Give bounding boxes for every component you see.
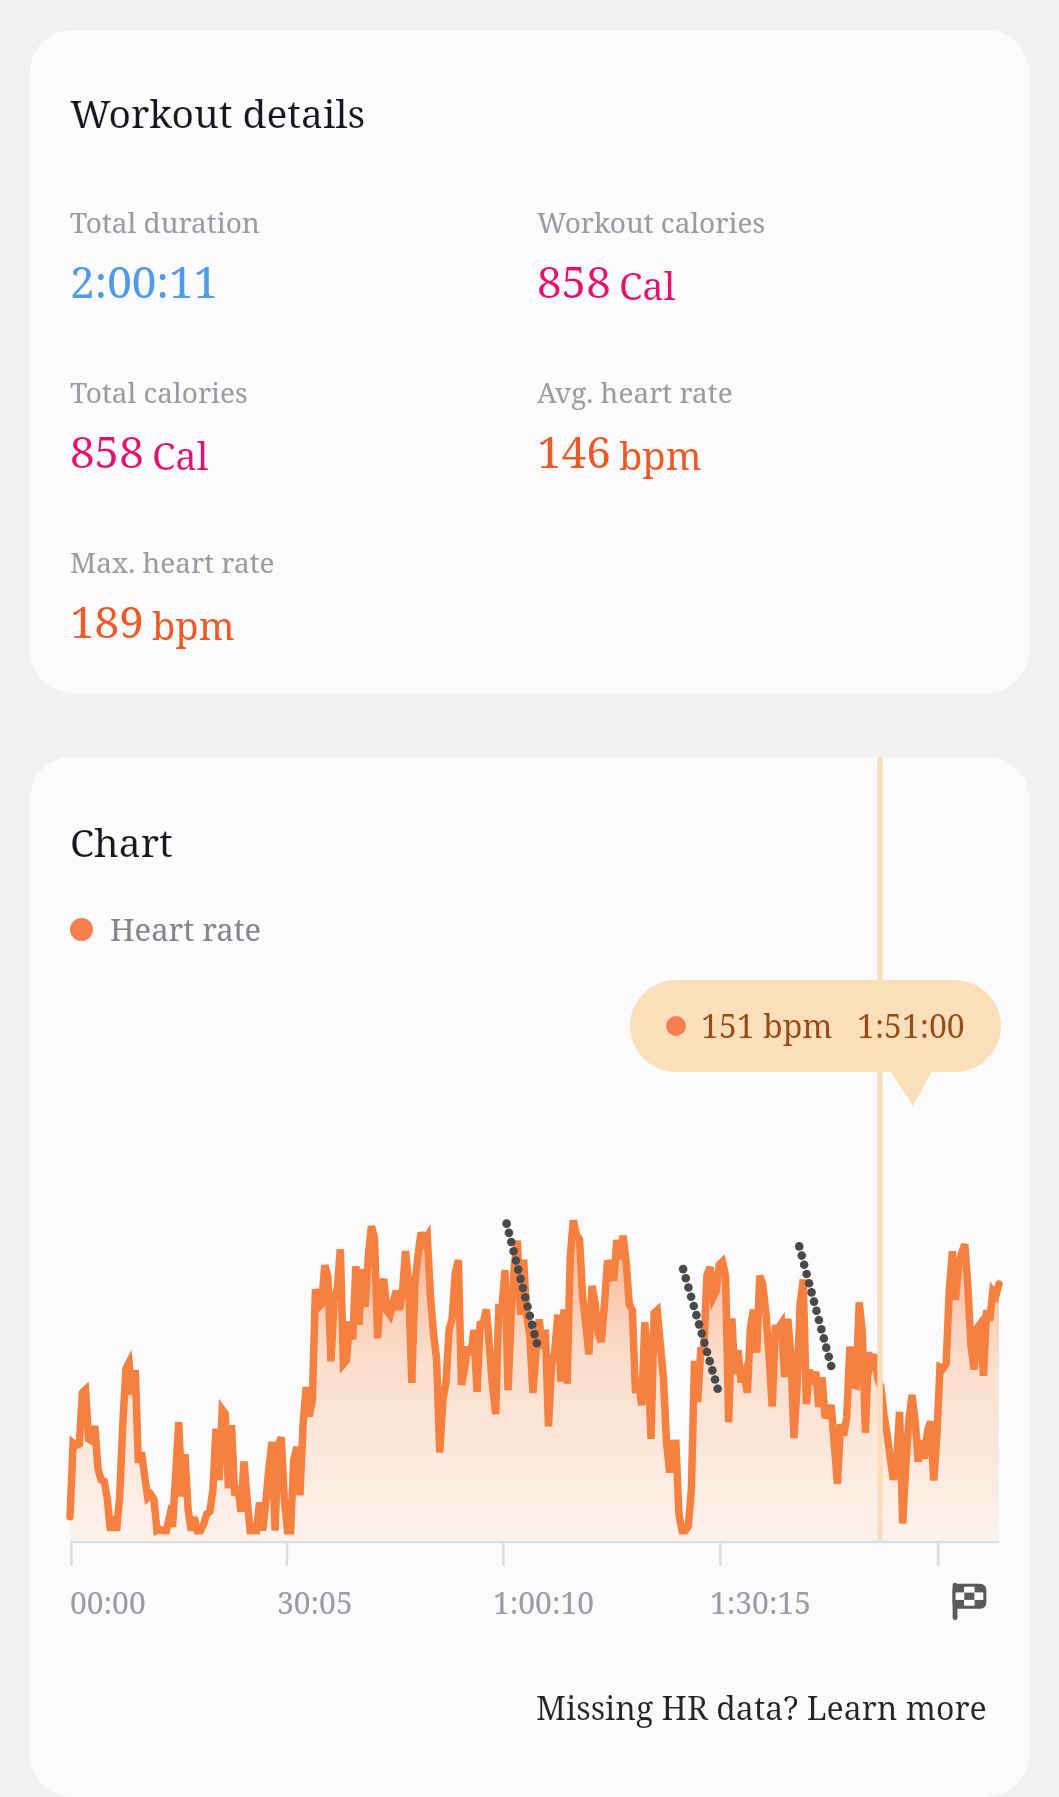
staticText: 1:51:00: [857, 1004, 965, 1048]
staticText: 858: [537, 251, 611, 311]
staticText: Chart: [70, 815, 173, 868]
button[interactable]: Heart rate: [70, 908, 262, 950]
staticText: 146: [537, 421, 611, 481]
button[interactable]: Workout finished: [947, 1580, 991, 1624]
staticText: Workout details: [70, 86, 366, 139]
button[interactable]: Avg. heart rate: [537, 373, 1005, 481]
staticText: Cal: [619, 259, 676, 311]
staticText: 30:05: [277, 1582, 353, 1623]
staticText: 858: [70, 421, 144, 481]
staticText: Cal: [152, 429, 209, 481]
staticText: Avg. heart rate: [537, 373, 733, 411]
button[interactable]: 151 bpm: [630, 980, 1001, 1072]
staticText: Heart rate: [110, 908, 262, 950]
staticText: 2:00:11: [70, 251, 219, 311]
staticText: Total calories: [70, 373, 248, 411]
button[interactable]: Max. heart rate: [70, 543, 537, 651]
staticText: bpm: [152, 599, 235, 651]
staticText: Workout calories: [537, 203, 766, 241]
staticText: 1:30:15: [710, 1582, 812, 1623]
button[interactable]: Total calories: [70, 373, 537, 481]
button[interactable]: Total duration: [70, 203, 537, 311]
staticText: 151 bpm: [701, 1004, 833, 1048]
staticText: 189: [70, 591, 144, 651]
button[interactable]: Missing HR data? Learn more: [536, 1686, 987, 1730]
staticText: 1:00:10: [493, 1582, 595, 1623]
button[interactable]: Workout calories: [537, 203, 1005, 311]
staticText: 00:00: [70, 1582, 146, 1623]
staticText: Max. heart rate: [70, 543, 275, 581]
staticText: bpm: [619, 429, 702, 481]
staticText: Total duration: [70, 203, 260, 241]
